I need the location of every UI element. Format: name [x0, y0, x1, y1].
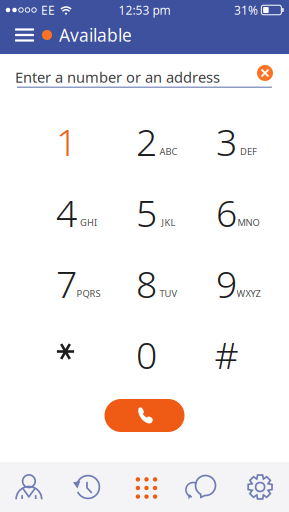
staticText: Enter a number or an address [15, 67, 220, 87]
staticText: 5 [136, 188, 157, 237]
staticText: ABC [159, 145, 177, 158]
button[interactable]: 1 [24, 107, 104, 178]
staticText: DEF [240, 145, 257, 158]
button[interactable]: # [184, 320, 264, 391]
staticText: GHI [80, 216, 97, 229]
staticText: 8 [136, 259, 157, 308]
button[interactable]: Menu [10, 18, 39, 52]
staticText: EE [41, 2, 55, 18]
button[interactable] [24, 320, 104, 391]
staticText: WXYZ [236, 287, 260, 300]
staticText: TUV [159, 287, 177, 300]
button[interactable]: Recents [58, 462, 116, 512]
button[interactable]: Clear [253, 61, 277, 85]
staticText: MNO [237, 216, 259, 229]
button[interactable]: 2 [104, 107, 184, 178]
button[interactable]: 6 [184, 178, 264, 249]
button[interactable]: 4 [24, 178, 104, 249]
staticText: 4 [56, 188, 77, 237]
staticText: 0 [136, 330, 157, 379]
staticText: 12:53 pm [118, 2, 170, 18]
staticText: 6 [216, 188, 237, 237]
button[interactable]: Settings [231, 462, 289, 512]
button[interactable]: 9 [184, 249, 264, 320]
staticText: 9 [216, 259, 237, 308]
staticText: JKL [161, 216, 175, 229]
button[interactable]: 5 [104, 178, 184, 249]
staticText: 2 [136, 117, 157, 166]
staticText: 31% [234, 2, 258, 18]
staticText: Available [59, 23, 132, 46]
button[interactable]: Call [104, 399, 184, 432]
staticText: 1 [56, 117, 77, 166]
staticText: 7 [56, 259, 77, 308]
button[interactable]: Keypad [116, 462, 173, 512]
button[interactable]: Contacts [0, 462, 58, 512]
button[interactable]: 0 [104, 320, 184, 391]
staticText: 3 [216, 117, 237, 166]
button[interactable]: Messages [173, 462, 231, 512]
button[interactable]: 3 [184, 107, 264, 178]
staticText: PQRS [76, 287, 100, 300]
button[interactable]: 8 [104, 249, 184, 320]
button[interactable]: 7 [24, 249, 104, 320]
staticText: # [214, 330, 238, 379]
